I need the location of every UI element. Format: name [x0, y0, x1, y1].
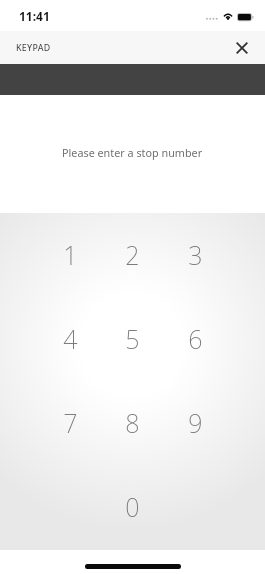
button[interactable]: 5	[101, 297, 163, 381]
staticText: Please enter a stop number	[62, 145, 203, 160]
button[interactable]: 6	[163, 297, 265, 381]
staticText: 4	[63, 322, 78, 356]
staticText: 1	[63, 238, 78, 272]
staticText: 0	[125, 490, 140, 524]
button[interactable]: 2	[101, 213, 163, 297]
staticText: 6	[188, 322, 203, 356]
staticText: 3	[188, 238, 203, 272]
staticText: 8	[125, 406, 140, 440]
staticText: 7	[63, 406, 78, 440]
staticText: KEYPAD	[16, 42, 51, 54]
button[interactable]: 3	[163, 213, 265, 297]
button[interactable]: 9	[163, 381, 265, 465]
button[interactable]: 8	[101, 381, 163, 465]
staticText: 2	[125, 238, 140, 272]
button[interactable]: Close	[225, 31, 258, 64]
staticText: 11:41	[19, 8, 50, 24]
staticText: 5	[125, 322, 140, 356]
button[interactable]: 0	[101, 465, 163, 549]
staticText: 9	[188, 406, 203, 440]
button[interactable]: 7	[0, 381, 101, 465]
button[interactable]: 4	[0, 297, 101, 381]
button[interactable]: 1	[0, 213, 101, 297]
